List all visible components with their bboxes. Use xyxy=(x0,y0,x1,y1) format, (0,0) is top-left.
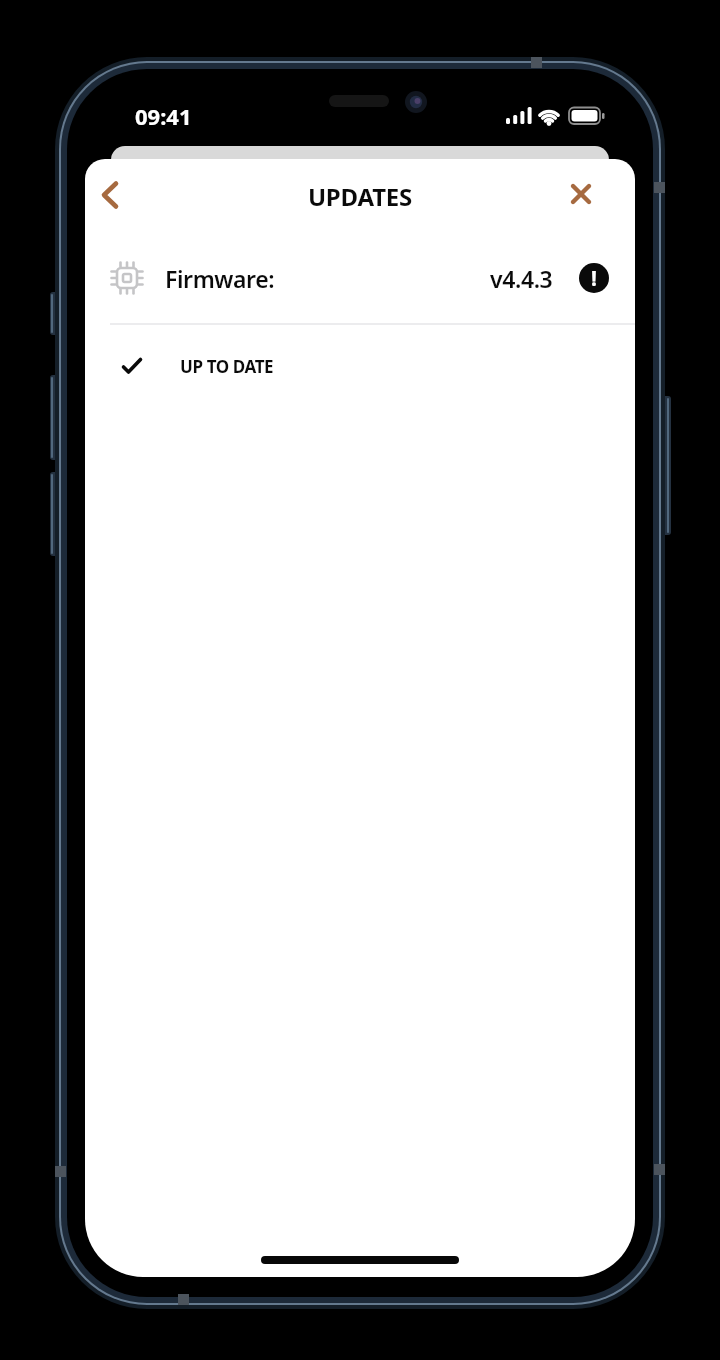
staticText: UPDATES xyxy=(85,180,635,213)
staticText: Firmware: xyxy=(165,263,275,294)
button[interactable] xyxy=(560,173,602,215)
staticText: ! xyxy=(591,264,597,293)
staticText: UP TO DATE xyxy=(180,355,274,378)
button[interactable]: UP TO DATE xyxy=(85,341,635,391)
button[interactable]: Firmware: xyxy=(85,252,635,304)
staticText: v4.4.3 xyxy=(490,263,553,294)
button[interactable] xyxy=(89,174,131,216)
staticText: 09:41 xyxy=(135,101,192,131)
